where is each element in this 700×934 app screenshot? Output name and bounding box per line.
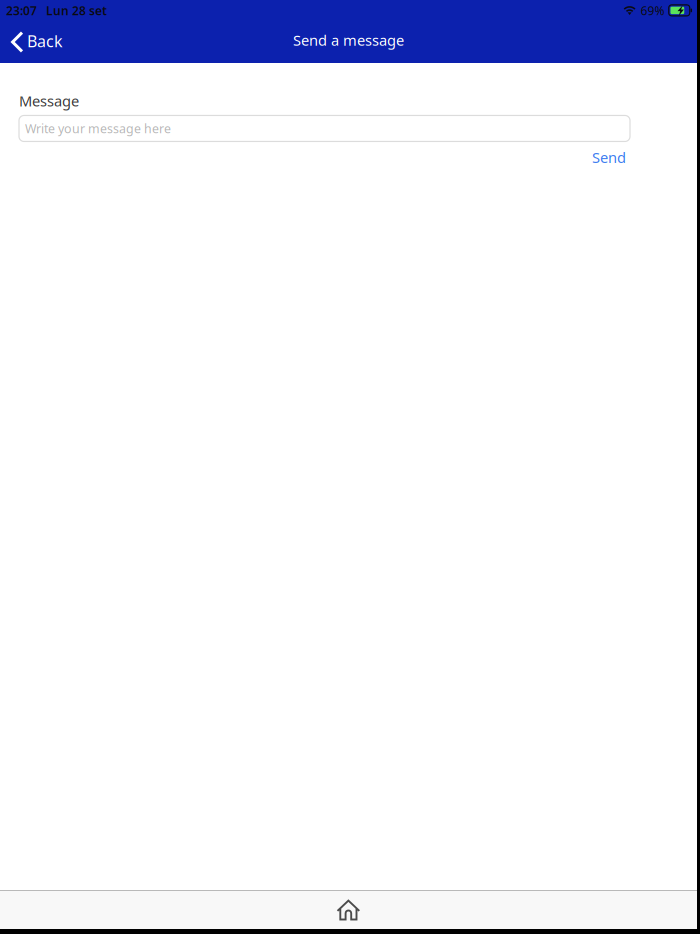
staticText: 23:07 (6, 2, 37, 18)
button[interactable]: Back (0, 21, 75, 63)
staticText: 69% (640, 2, 664, 18)
staticText: Write your message here (25, 120, 171, 137)
staticText: Send (592, 147, 626, 167)
staticText: Lun 28 set (46, 2, 107, 18)
staticText: Message (19, 91, 79, 110)
button[interactable]: Home (314, 890, 382, 929)
button[interactable]: Write your message here (19, 115, 630, 141)
button[interactable]: Send (588, 144, 630, 170)
staticText: Send a message (293, 30, 404, 50)
staticText: Back (27, 30, 63, 52)
